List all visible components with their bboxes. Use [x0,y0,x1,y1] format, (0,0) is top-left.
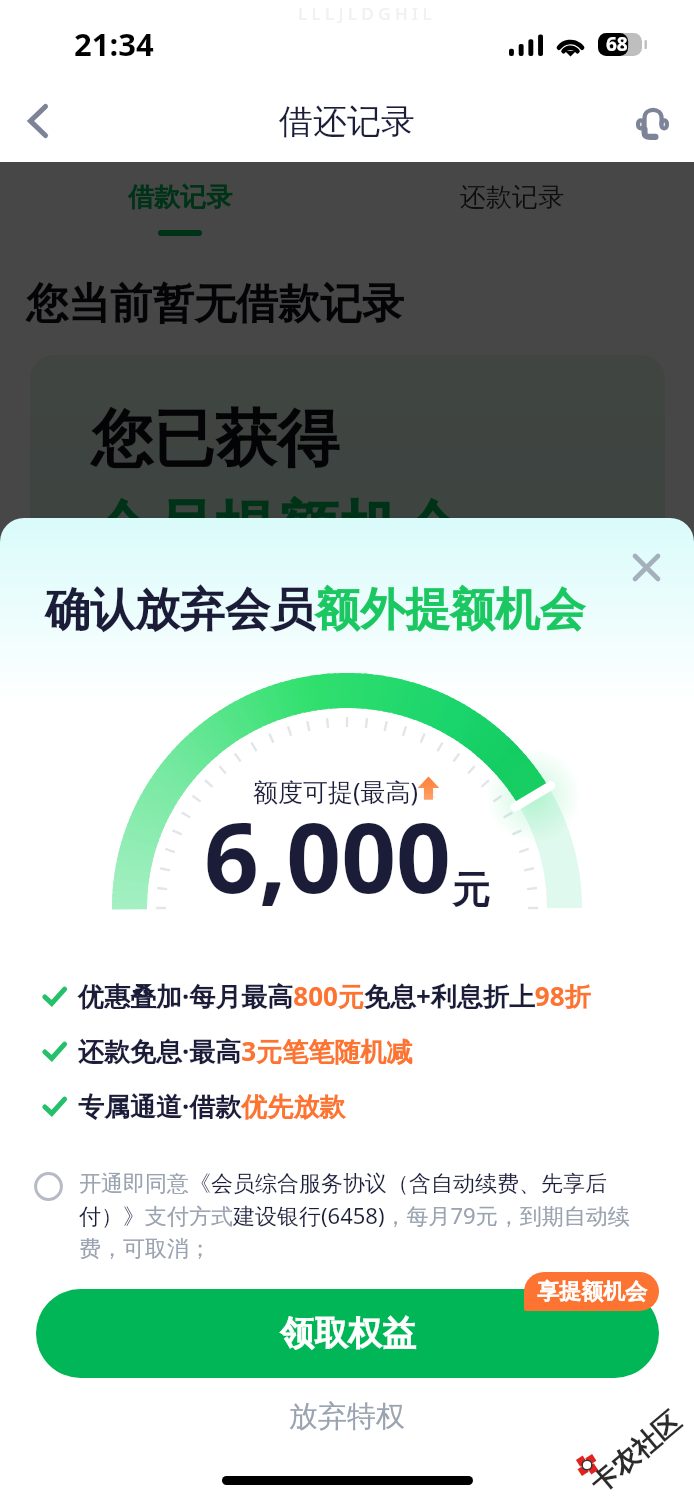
button[interactable]: 借款记录 [80,181,280,236]
button[interactable]: 专属通道·借款优先放款 [43,1088,346,1124]
button[interactable]: 优惠叠加·每月最高800元免息+利息折上98折 [43,978,591,1014]
staticText: 开通即同意《会员综合服务协议（含自动续费、先享后付）》支付方式建设银行(6458… [79,1170,636,1262]
staticText: 确认放弃会员额外提额机会 [45,582,585,639]
staticText: L L L J L D G H I L [298,2,432,25]
button[interactable]: Close [624,545,668,589]
staticText: 6,000 [204,790,452,921]
button[interactable]: 您已获得 [30,355,665,675]
staticText: 专属通道·借款优先放款 [78,1088,346,1124]
staticText: 还款免息·最高3元笔笔随机减 [78,1033,413,1069]
button[interactable]: 享提额机会 [524,1272,659,1311]
staticText: 领取权益 [280,1312,416,1355]
staticText: 68 [606,31,628,57]
staticText: 享提额机会 [537,1278,647,1306]
button[interactable]: 领取权益 [36,1289,659,1378]
staticText: 额度可提(最高) [253,774,419,808]
staticText: 还款记录 [460,181,564,214]
staticText: 借还记录 [279,100,415,143]
staticText: 会员提额机会 [91,491,463,569]
button[interactable]: 还款记录 [412,181,612,214]
staticText: 元 [452,866,490,914]
staticText: 借款记录 [128,181,232,214]
button[interactable]: 还款免息·最高3元笔笔随机减 [43,1033,413,1069]
staticText: 优惠叠加·每月最高800元免息+利息折上98折 [78,978,591,1014]
button[interactable]: 开通即同意《会员综合服务协议（含自动续费、先享后付）》支付方式建设银行(6458… [34,1170,636,1262]
button[interactable]: Back [14,97,62,145]
button[interactable]: 放弃特权 [0,1398,694,1435]
staticText: 21:34 [74,23,154,65]
staticText: 您已获得 [91,400,339,478]
button[interactable]: Customer service [628,97,676,145]
staticText: 卡农社区 [583,1405,688,1500]
staticText: 您当前暂无借款记录 [26,278,404,331]
